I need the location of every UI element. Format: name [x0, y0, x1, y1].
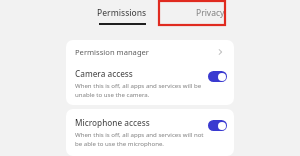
staticText: Microphone access — [75, 117, 150, 128]
button[interactable]: Permission manager — [66, 40, 234, 63]
staticText: unable to use the camera. — [75, 90, 150, 98]
button[interactable]: Microphone access — [66, 112, 234, 150]
staticText: Permissions — [97, 7, 147, 19]
staticText: Camera access — [75, 68, 133, 79]
button[interactable]: Permissions — [86, 0, 158, 30]
staticText: be able to use the microphone. — [75, 139, 165, 147]
staticText: When this is off, all apps and services … — [75, 130, 204, 138]
staticText: Permission manager — [75, 47, 149, 57]
staticText: When this is off, all apps and services … — [75, 81, 202, 89]
button[interactable]: Privacy — [180, 0, 240, 30]
staticText: Privacy — [196, 7, 225, 19]
other: Open permission manager — [215, 47, 225, 57]
button[interactable]: Camera access — [66, 63, 234, 101]
button[interactable]: Toggle access on — [208, 120, 227, 131]
button[interactable]: Toggle access on — [208, 71, 227, 82]
